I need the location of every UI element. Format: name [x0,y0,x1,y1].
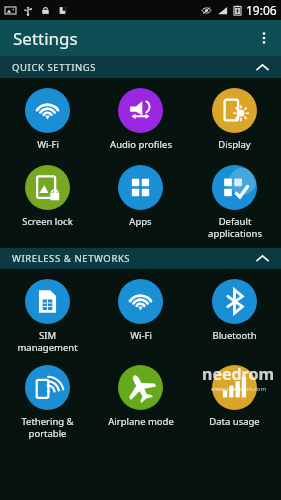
staticText: QUICK SETTINGS [12,61,97,74]
button[interactable]: Wi-Fi [94,275,187,344]
staticText: www.needrom.com [211,385,267,393]
staticText: Apps [129,215,152,228]
button[interactable]: Apps [94,161,187,230]
staticText: Wi-Fi [130,329,152,342]
staticText: Airplane mode [108,415,174,428]
button[interactable]: Tethering & portable [1,361,94,441]
staticText: Default applications [208,215,262,239]
staticText: Screen lock [22,215,73,228]
button[interactable]: Bluetooth [188,275,281,344]
staticText: Tethering & portable [21,415,74,439]
button[interactable]: More options [247,21,281,55]
button[interactable]: Default applications [188,161,281,241]
button[interactable]: Airplane mode [94,361,187,430]
staticText: WIRELESS & NETWORKS [12,252,131,265]
button[interactable]: Data usage [188,361,281,430]
button[interactable]: SIM management [1,275,94,355]
staticText: SIM management [17,329,78,353]
button[interactable]: Screen lock [1,161,94,230]
staticText: Data usage [209,415,260,428]
button[interactable]: Display [188,84,281,153]
staticText: Wi-Fi [37,138,59,151]
staticText: Settings [13,27,78,50]
staticText: Display [218,138,251,151]
button[interactable]: Audio profiles [94,84,187,153]
button[interactable]: QUICK SETTINGS [0,57,281,78]
staticText: Bluetooth [212,329,257,342]
button[interactable]: Wi-Fi [1,84,94,153]
staticText: needrom [202,363,275,385]
button[interactable]: WIRELESS & NETWORKS [0,248,281,269]
staticText: 19:06 [246,2,277,18]
staticText: Audio profiles [110,138,172,151]
